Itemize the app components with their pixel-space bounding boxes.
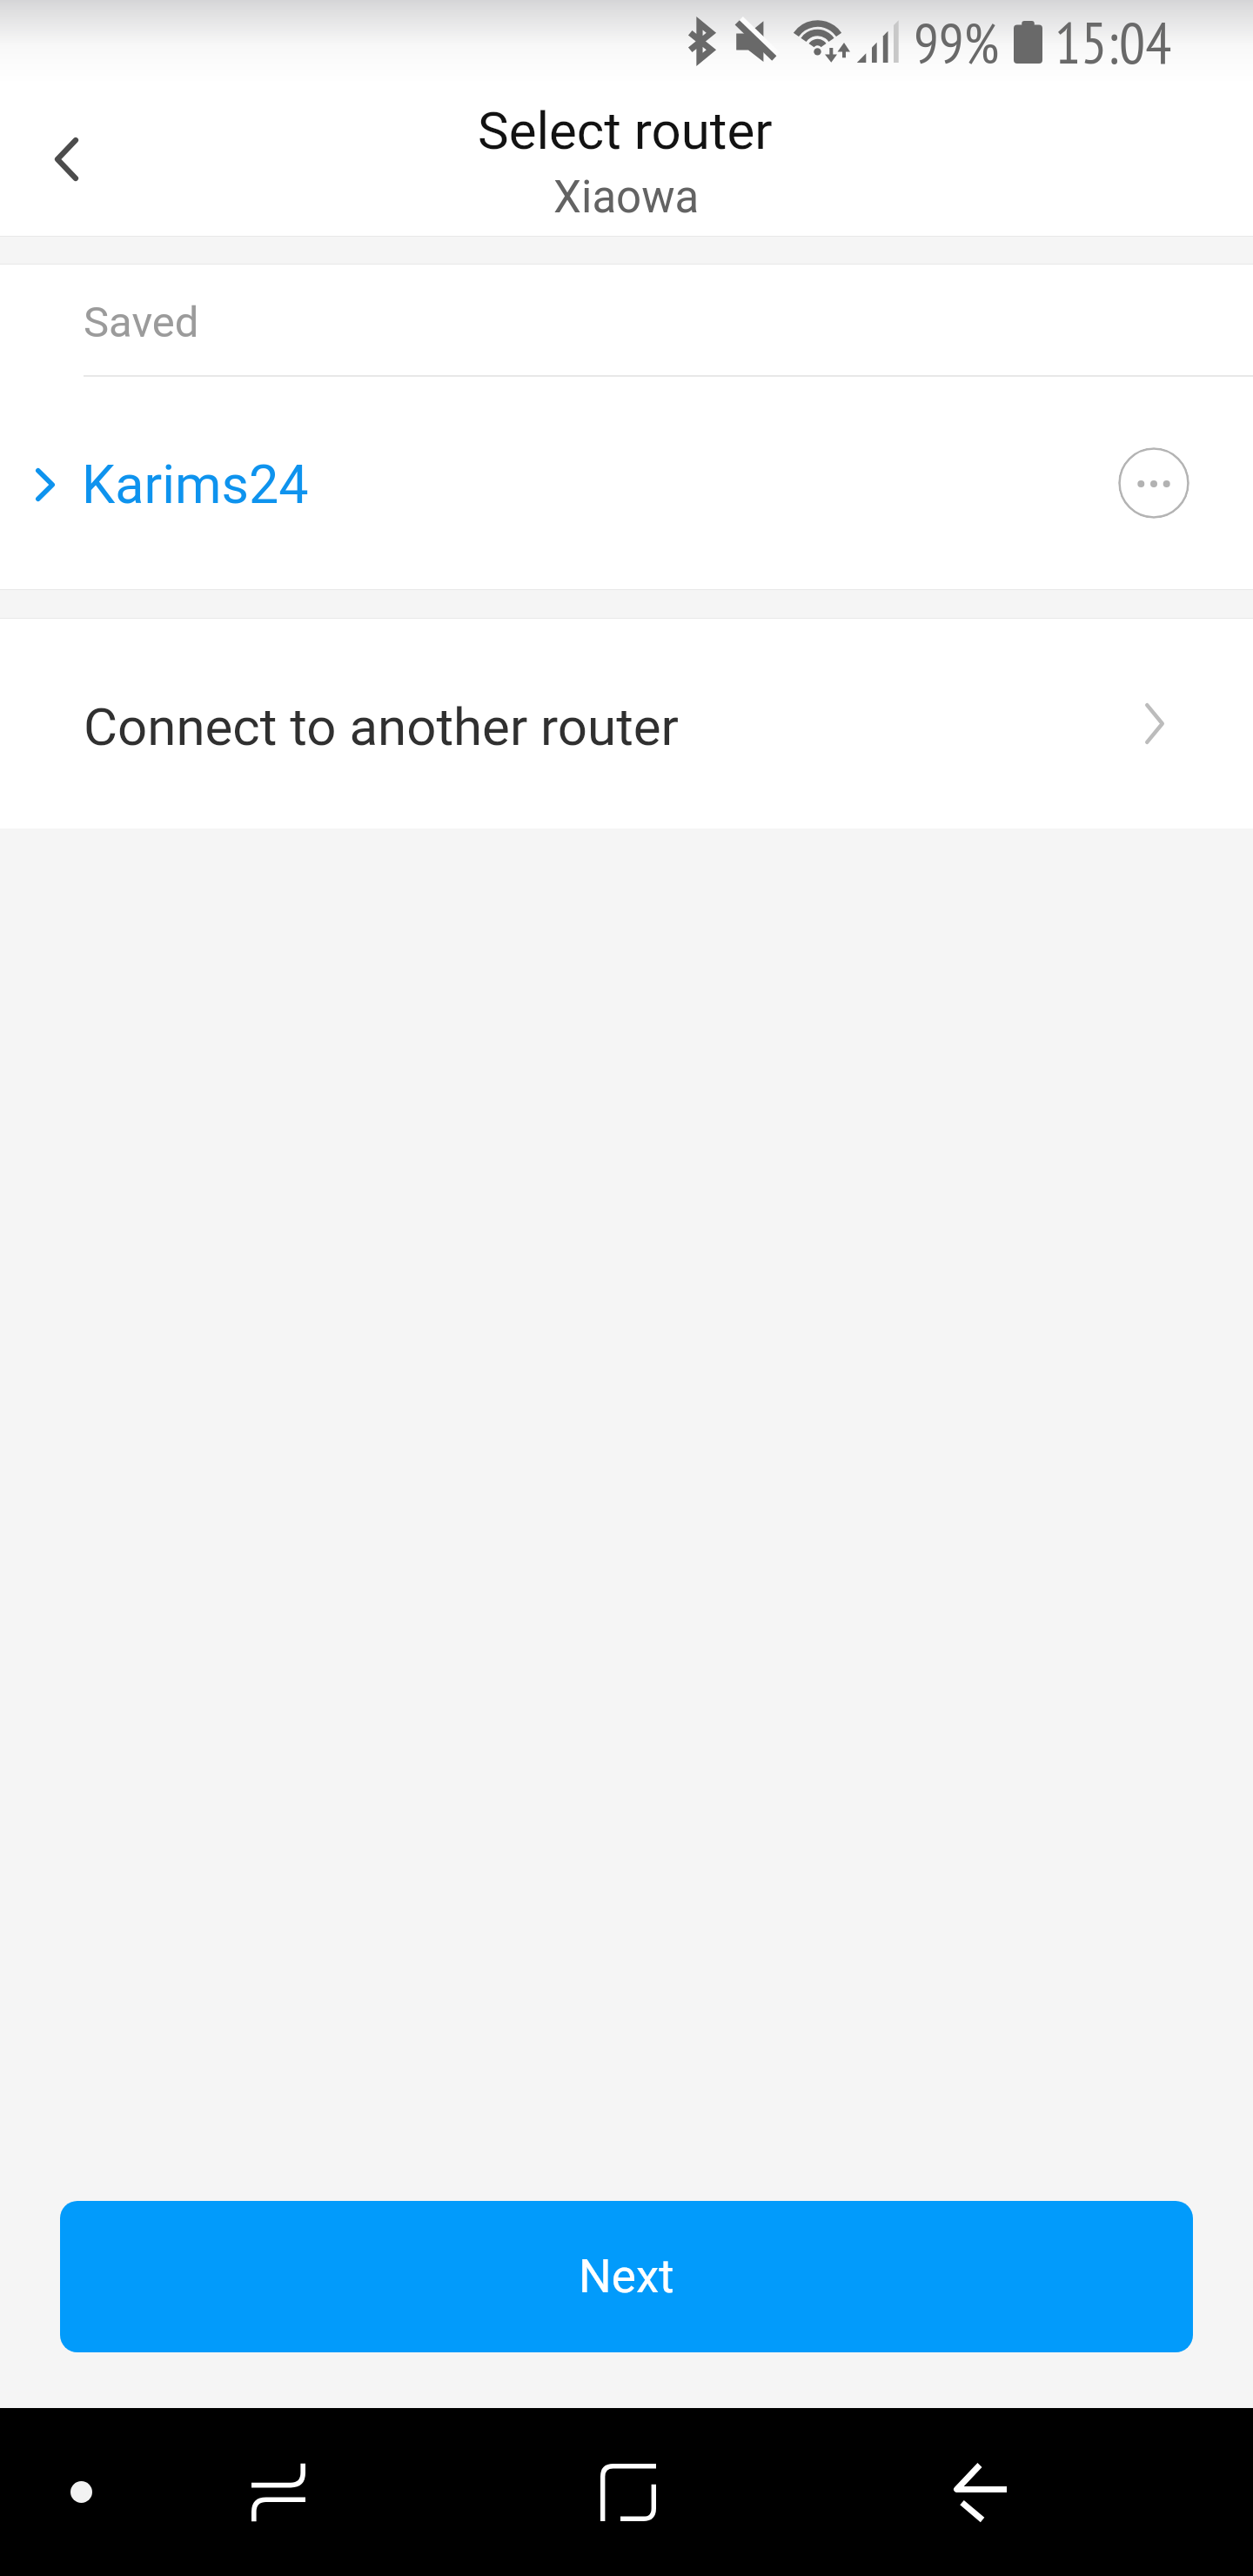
- staticText: Saved: [84, 298, 199, 347]
- staticText: Connect to another router: [84, 696, 679, 757]
- button[interactable]: Back: [0, 93, 132, 225]
- staticText: Next: [579, 2250, 674, 2304]
- staticText: Karims24: [82, 453, 309, 515]
- staticText: Xiaowa: [553, 171, 700, 224]
- staticText: Select router: [478, 100, 773, 161]
- button[interactable]: More options: [1118, 447, 1189, 519]
- button[interactable]: Back: [928, 2408, 1032, 2576]
- button[interactable]: Recents: [226, 2408, 331, 2576]
- staticText: 15:04: [1055, 4, 1172, 80]
- button[interactable]: Connect to another router: [0, 619, 1253, 828]
- button[interactable]: Assistant: [29, 2408, 133, 2576]
- staticText: 99%: [914, 6, 1000, 78]
- button[interactable]: Karims24: [0, 377, 1253, 589]
- button[interactable]: Home: [576, 2408, 680, 2576]
- button[interactable]: Next: [60, 2201, 1193, 2352]
